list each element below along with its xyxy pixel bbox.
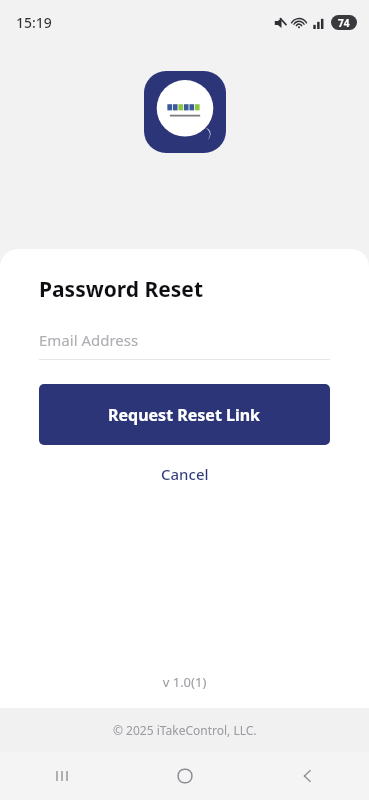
other: Impact Duchenne logo	[144, 71, 226, 153]
button[interactable]: Home	[123, 752, 246, 800]
staticText: v 1.0(1)	[0, 673, 369, 691]
button[interactable]: Email Address	[39, 330, 330, 360]
staticText: Email Address	[39, 330, 139, 350]
button[interactable]: Request Reset Link	[39, 384, 330, 445]
staticText: 74	[338, 16, 350, 30]
staticText: Request Reset Link	[108, 404, 261, 426]
button[interactable]: Back	[246, 752, 369, 800]
staticText: Cancel	[161, 464, 209, 484]
staticText: © 2025 iTakeControl, LLC.	[113, 722, 257, 738]
staticText: 15:19	[16, 13, 52, 32]
button[interactable]: Recent apps	[0, 752, 123, 800]
staticText: Password Reset	[39, 275, 204, 304]
button[interactable]: Cancel	[0, 455, 369, 493]
